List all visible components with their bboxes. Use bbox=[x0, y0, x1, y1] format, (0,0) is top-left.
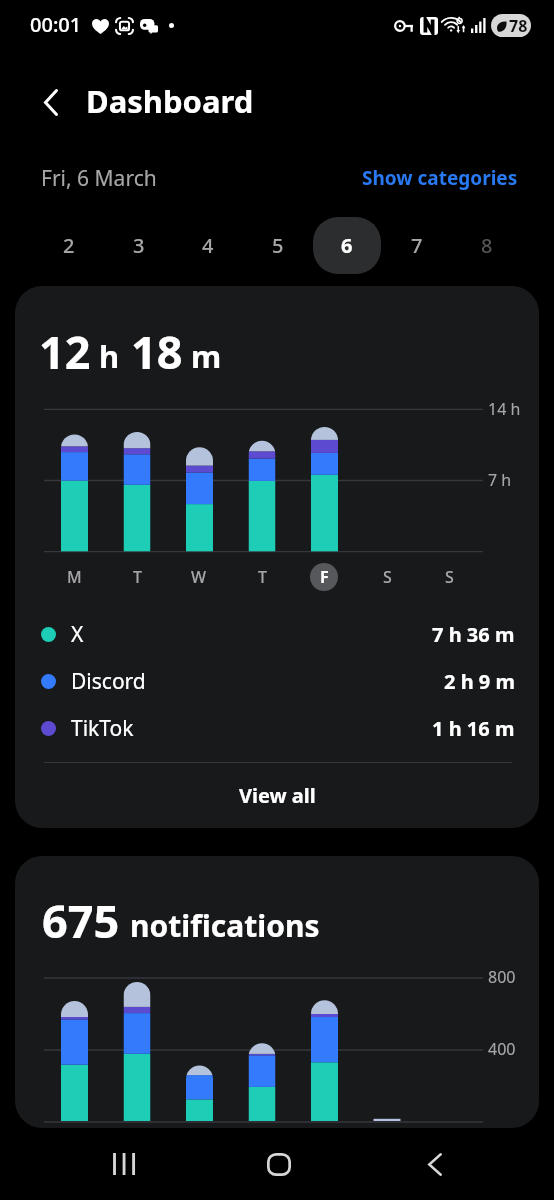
button[interactable]: 5 bbox=[244, 217, 312, 274]
button[interactable]: X bbox=[15, 611, 539, 657]
staticText: 6 bbox=[341, 232, 353, 259]
button[interactable]: 6 bbox=[313, 217, 381, 274]
staticText: 7 h bbox=[488, 469, 512, 491]
button[interactable]: 4 bbox=[174, 217, 242, 274]
button[interactable]: 8 bbox=[453, 217, 521, 274]
button[interactable]: Recent apps bbox=[101, 1143, 144, 1185]
staticText: T bbox=[258, 566, 267, 588]
button[interactable]: Back bbox=[413, 1143, 456, 1185]
staticText: 12 bbox=[39, 321, 91, 382]
button[interactable]: Back bbox=[28, 79, 74, 125]
button[interactable]: TikTok bbox=[15, 705, 539, 751]
staticText: 7 bbox=[411, 232, 423, 259]
staticText: S bbox=[445, 566, 454, 588]
staticText: 5 bbox=[272, 232, 284, 259]
staticText: 3 bbox=[133, 232, 145, 259]
staticText: W bbox=[191, 566, 207, 588]
staticText: 675 bbox=[42, 890, 120, 951]
staticText: S bbox=[383, 566, 392, 588]
button[interactable]: 12 bbox=[15, 286, 539, 828]
staticText: 7 h 36 m bbox=[432, 621, 515, 648]
staticText: 00:01 bbox=[30, 11, 82, 38]
button[interactable]: 3 bbox=[105, 217, 173, 274]
staticText: M bbox=[67, 566, 82, 588]
staticText: X bbox=[71, 620, 84, 649]
button[interactable]: Discord bbox=[15, 658, 539, 704]
staticText: 8 bbox=[481, 232, 493, 259]
staticText: Dashboard bbox=[86, 80, 254, 122]
staticText: m bbox=[191, 335, 222, 377]
staticText: Show categories bbox=[362, 165, 518, 191]
staticText: F bbox=[320, 566, 329, 588]
button[interactable]: 2 bbox=[35, 217, 103, 274]
button[interactable]: 675 bbox=[15, 856, 539, 1128]
button[interactable]: Home bbox=[257, 1143, 300, 1185]
button[interactable]: View all bbox=[15, 763, 539, 827]
staticText: 4 bbox=[202, 232, 214, 259]
staticText: notifications bbox=[130, 905, 320, 946]
staticText: View all bbox=[239, 782, 316, 809]
button[interactable]: 7 bbox=[383, 217, 451, 274]
staticText: 2 h 9 m bbox=[444, 668, 515, 695]
staticText: 400 bbox=[488, 1038, 516, 1060]
staticText: TikTok bbox=[71, 714, 134, 743]
button[interactable]: Show categories bbox=[360, 159, 520, 197]
staticText: 1 h 16 m bbox=[432, 715, 515, 742]
staticText: 18 bbox=[131, 321, 183, 382]
staticText: Discord bbox=[71, 667, 146, 696]
staticText: h bbox=[99, 335, 120, 377]
staticText: 800 bbox=[488, 966, 516, 988]
staticText: 2 bbox=[63, 232, 75, 259]
staticText: 14 h bbox=[488, 398, 521, 420]
staticText: Fri, 6 March bbox=[41, 164, 157, 193]
staticText: 78 bbox=[509, 15, 528, 37]
staticText: T bbox=[133, 566, 142, 588]
